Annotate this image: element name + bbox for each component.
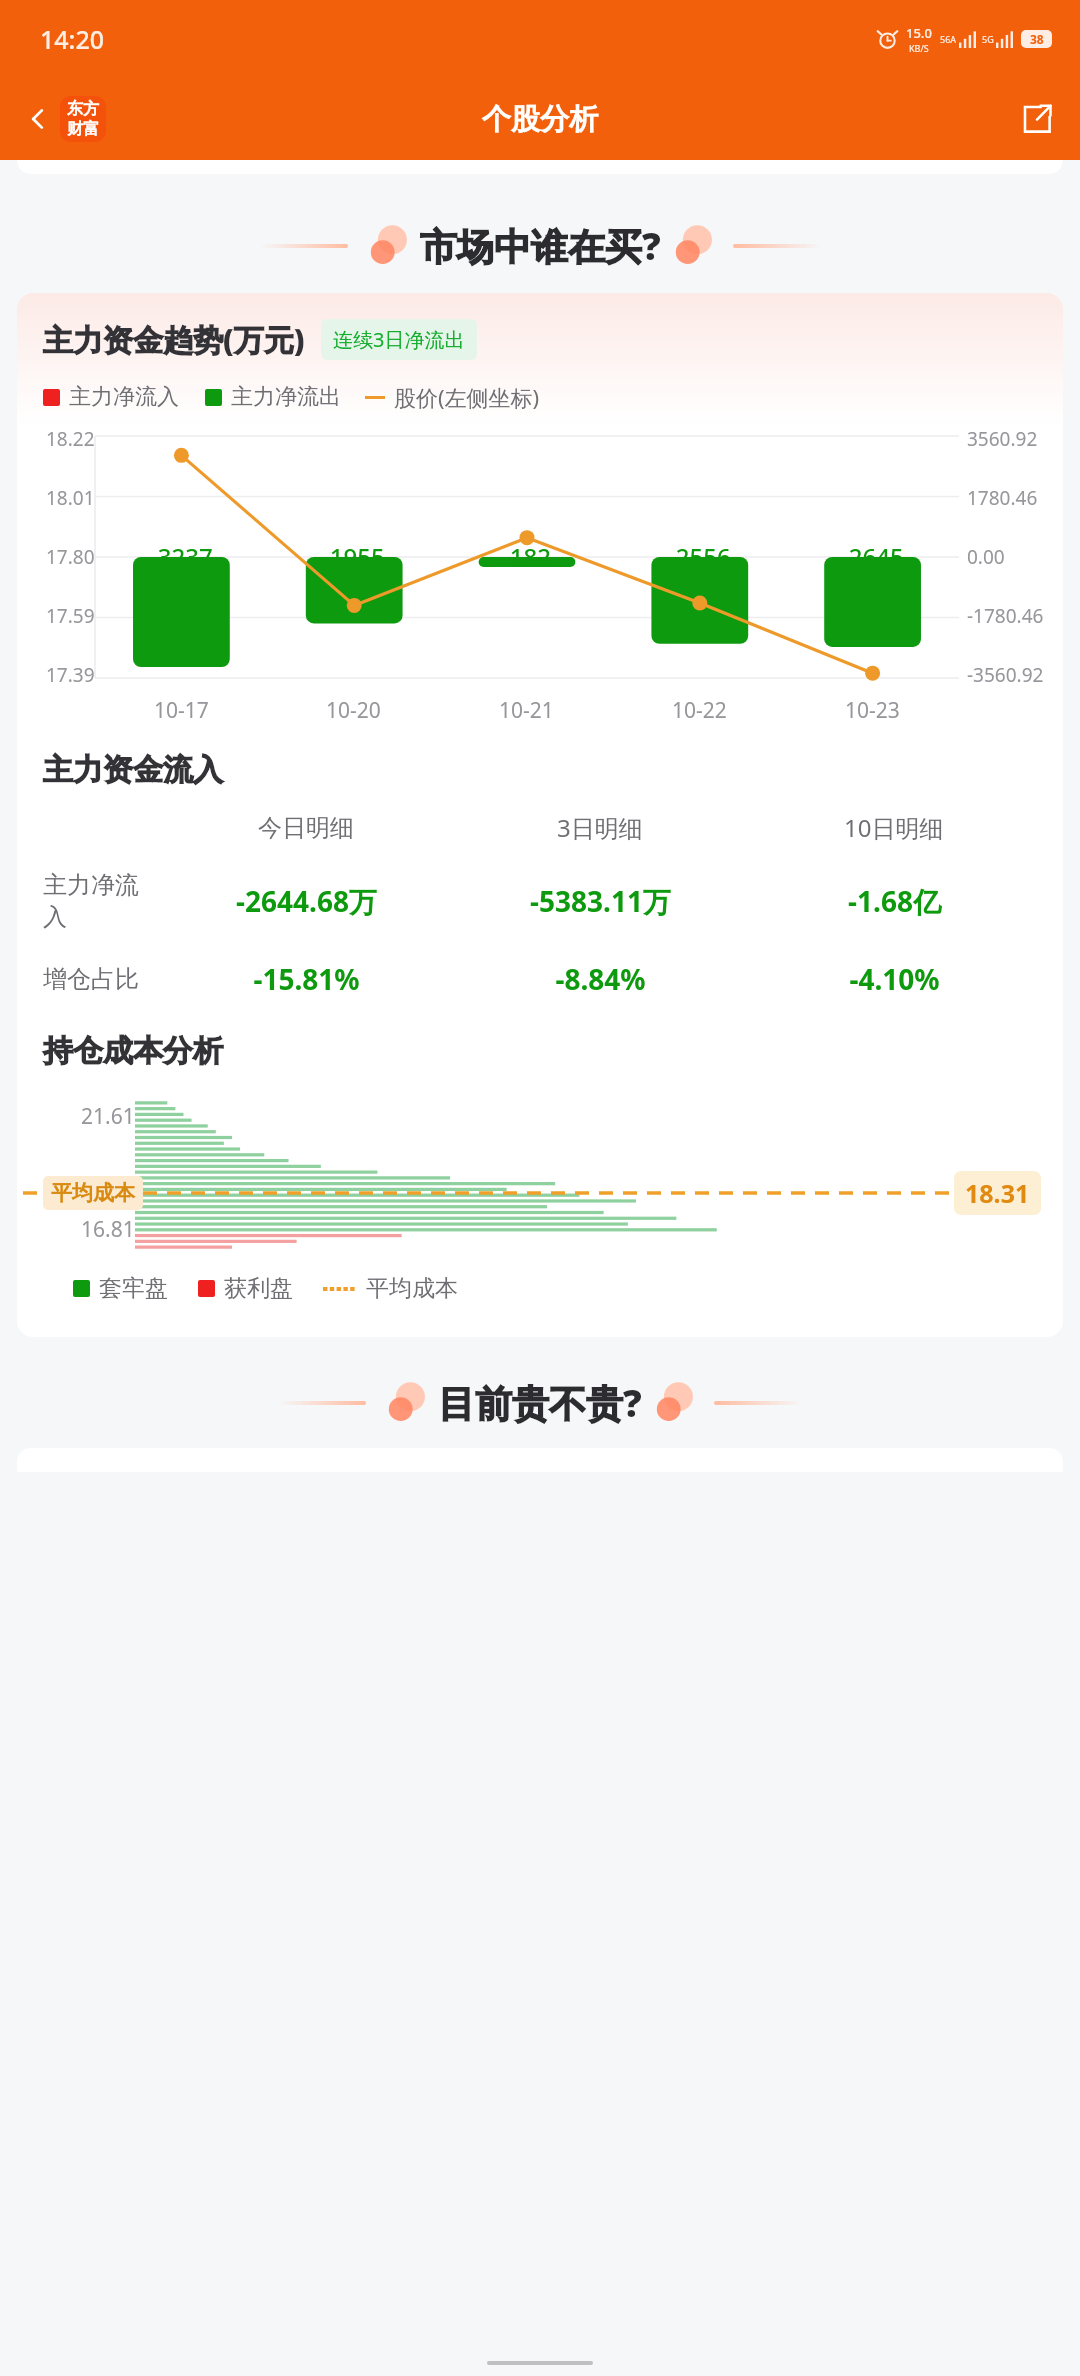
staticText: 10-17 bbox=[154, 696, 209, 725]
staticText: -1955 bbox=[322, 540, 385, 573]
staticText: 股价(左侧坐标) bbox=[394, 382, 540, 412]
staticText: 21.61 bbox=[81, 1102, 135, 1131]
staticText: 17.80 bbox=[46, 544, 95, 570]
staticText: 持仓成本分析 bbox=[43, 1032, 223, 1070]
staticText: -15.81% bbox=[253, 960, 360, 998]
staticText: 主力净流入 bbox=[43, 870, 159, 932]
staticText: 18.22 bbox=[46, 426, 95, 452]
staticText: 个股分析 bbox=[482, 101, 598, 138]
staticText: 15.0 bbox=[906, 24, 932, 42]
staticText: 3560.92 bbox=[967, 426, 1038, 452]
staticText: 0.00 bbox=[967, 544, 1005, 570]
staticText: 连续3日净流出 bbox=[333, 326, 465, 353]
staticText: 10-23 bbox=[845, 696, 900, 725]
staticText: 17.59 bbox=[46, 603, 95, 629]
staticText: -8.84% bbox=[555, 960, 646, 998]
staticText: 10-21 bbox=[499, 696, 554, 725]
staticText: -1.68亿 bbox=[848, 882, 941, 920]
button[interactable]: Back bbox=[16, 99, 60, 139]
staticText: -4.10% bbox=[849, 960, 940, 998]
staticText: -182 bbox=[502, 540, 551, 573]
staticText: 平均成本 bbox=[51, 1180, 135, 1206]
staticText: 主力资金趋势(万元) bbox=[43, 319, 305, 360]
staticText: 16.81 bbox=[81, 1215, 135, 1244]
staticText: -5383.11万 bbox=[530, 882, 671, 920]
staticText: 18.01 bbox=[46, 485, 95, 511]
staticText: 东方 bbox=[67, 99, 99, 119]
staticText: 38 bbox=[1030, 31, 1044, 47]
staticText: 17.39 bbox=[46, 662, 95, 688]
staticText: -2645 bbox=[841, 540, 904, 573]
staticText: -3560.92 bbox=[967, 662, 1044, 688]
staticText: 主力资金流入 bbox=[43, 751, 223, 789]
staticText: KB/S bbox=[909, 42, 929, 54]
staticText: 10-22 bbox=[672, 696, 727, 725]
staticText: 主力净流入 bbox=[69, 383, 179, 411]
staticText: -2556 bbox=[668, 540, 731, 573]
button[interactable]: Share bbox=[1012, 94, 1062, 144]
staticText: 主力净流出 bbox=[231, 383, 341, 411]
staticText: 增仓占比 bbox=[43, 964, 139, 994]
staticText: 10日明细 bbox=[844, 811, 944, 844]
staticText: 56A bbox=[940, 33, 957, 45]
staticText: 14:20 bbox=[40, 22, 105, 56]
staticText: 获利盘 bbox=[224, 1274, 293, 1303]
button[interactable]: 东方财富 bbox=[60, 96, 106, 142]
staticText: 18.31 bbox=[965, 1176, 1030, 1210]
staticText: 今日明细 bbox=[258, 813, 354, 843]
staticText: 平均成本 bbox=[366, 1274, 458, 1303]
staticText: -1780.46 bbox=[967, 603, 1044, 629]
staticText: -2644.68万 bbox=[236, 882, 377, 920]
staticText: 市场中谁在买? bbox=[420, 220, 661, 271]
staticText: 5G bbox=[982, 33, 994, 45]
staticText: -3237 bbox=[150, 540, 213, 573]
staticText: 1780.46 bbox=[967, 485, 1038, 511]
staticText: 财富 bbox=[67, 119, 99, 139]
staticText: 3日明细 bbox=[557, 811, 643, 844]
staticText: 10-20 bbox=[326, 696, 381, 725]
staticText: 目前贵不贵? bbox=[438, 1377, 642, 1428]
staticText: 套牢盘 bbox=[99, 1274, 168, 1303]
